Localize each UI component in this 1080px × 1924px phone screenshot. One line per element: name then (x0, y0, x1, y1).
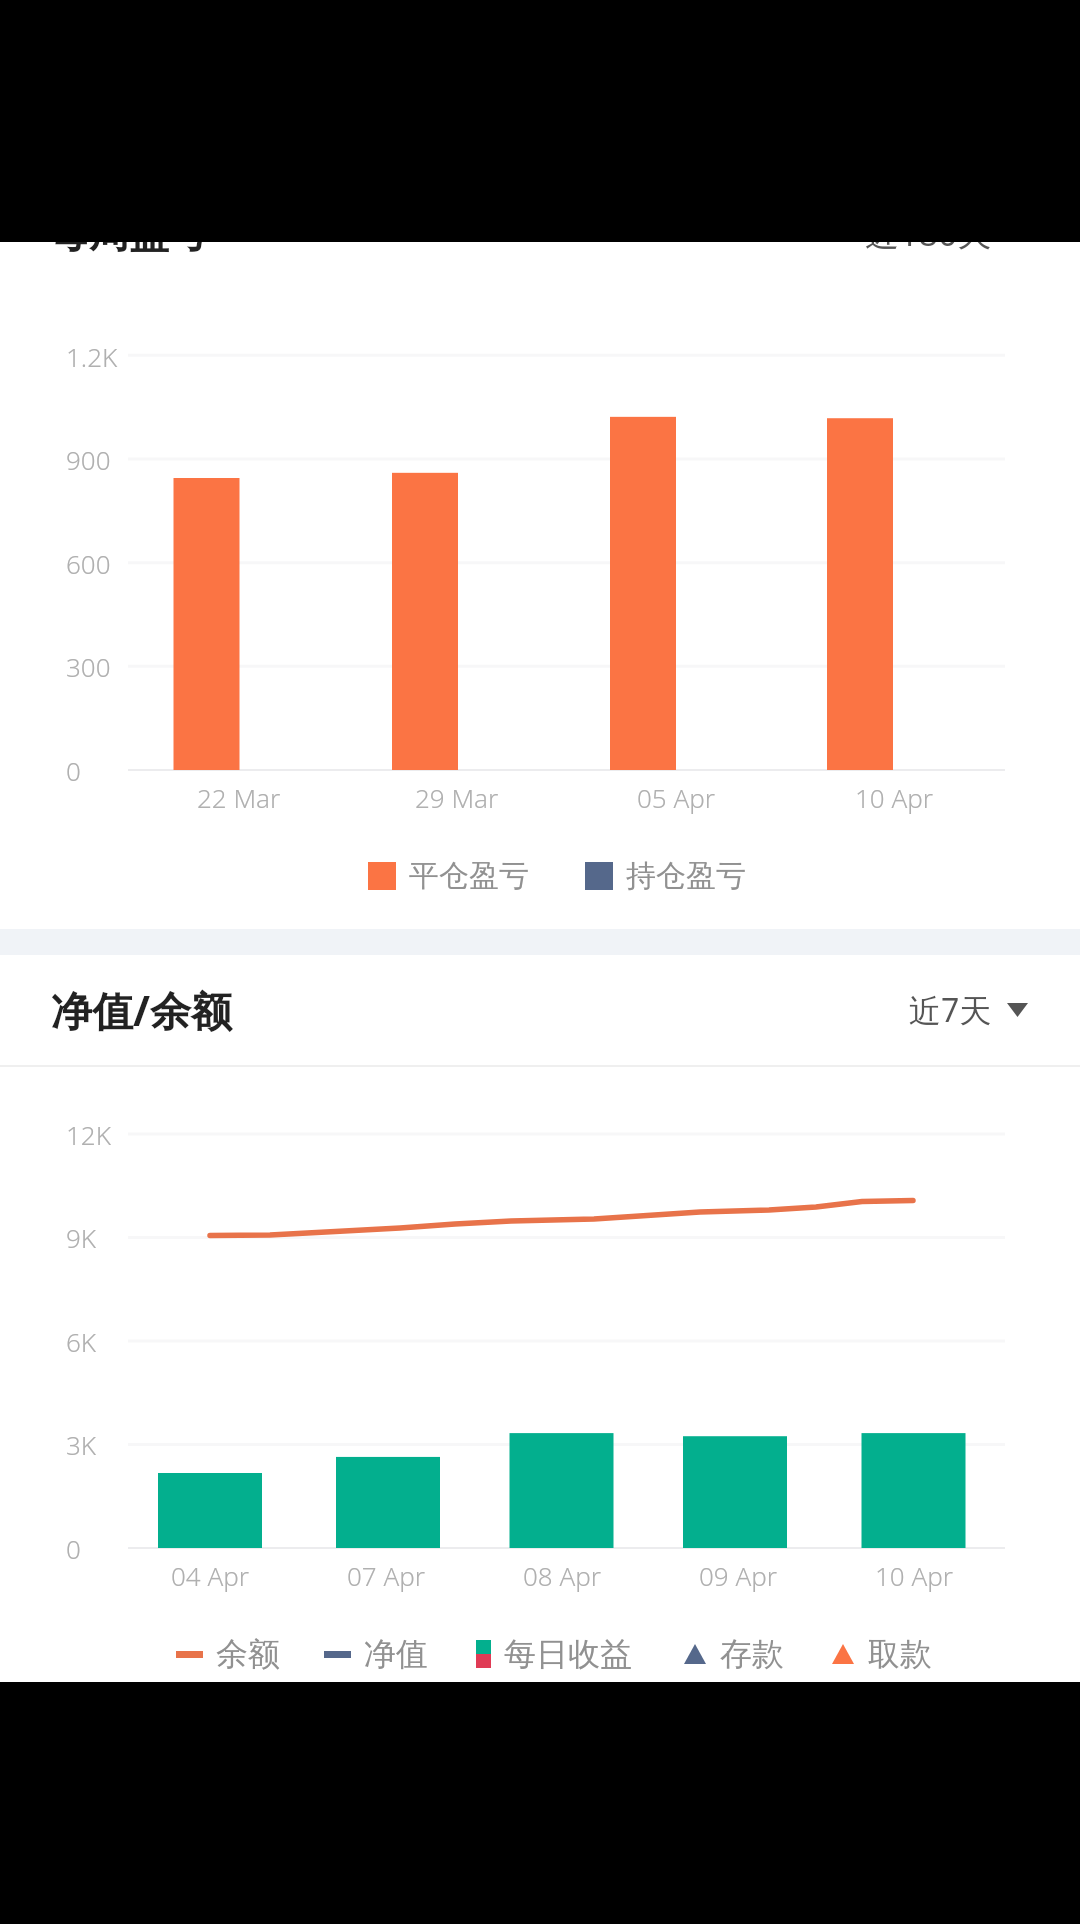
staticText: 3K (66, 1427, 97, 1462)
staticText: 余额 (216, 1634, 280, 1674)
staticText: 每日收益 (504, 1634, 632, 1674)
staticText: 05 Apr (637, 780, 716, 815)
staticText: 每周盈亏 (49, 242, 209, 258)
staticText: 平仓盈亏 (409, 857, 529, 895)
staticText: 存款 (720, 1634, 784, 1674)
staticText: 29 Mar (415, 780, 499, 815)
staticText: 0 (66, 753, 81, 788)
staticText: 08 Apr (523, 1558, 602, 1593)
button[interactable]: 持仓盈亏 (585, 857, 746, 895)
staticText: 取款 (868, 1634, 932, 1674)
staticText: 10 Apr (875, 1558, 954, 1593)
other: Change date range (1007, 1003, 1028, 1017)
button[interactable]: 净值/余额 (0, 955, 1080, 1065)
staticText: 07 Apr (347, 1558, 426, 1593)
staticText: 1.2K (66, 339, 118, 374)
staticText: 持仓盈亏 (626, 857, 746, 895)
button[interactable]: 取款 (832, 1634, 932, 1674)
staticText: 12K (66, 1117, 111, 1152)
staticText: 900 (66, 442, 111, 477)
button[interactable]: 净值 (324, 1634, 428, 1674)
button[interactable]: 每日收益 (476, 1634, 632, 1674)
staticText: 600 (66, 546, 111, 581)
button[interactable]: 余额 (176, 1634, 280, 1674)
staticText: 10 Apr (855, 780, 934, 815)
staticText: 09 Apr (699, 1558, 778, 1593)
staticText: 0 (66, 1531, 81, 1566)
staticText: 近180天 (865, 242, 992, 256)
staticText: 6K (66, 1324, 97, 1359)
staticText: 300 (66, 649, 111, 684)
staticText: 净值/余额 (51, 982, 233, 1038)
button[interactable]: 平仓盈亏 (368, 857, 529, 895)
staticText: 04 Apr (171, 1558, 250, 1593)
button[interactable]: 近7天 (905, 978, 1032, 1042)
button[interactable]: 存款 (684, 1634, 784, 1674)
staticText: 近7天 (909, 988, 992, 1032)
staticText: 净值 (364, 1634, 428, 1674)
button[interactable]: 每周盈亏 (0, 242, 1080, 279)
staticText: 9K (66, 1220, 97, 1255)
staticText: 22 Mar (197, 780, 281, 815)
